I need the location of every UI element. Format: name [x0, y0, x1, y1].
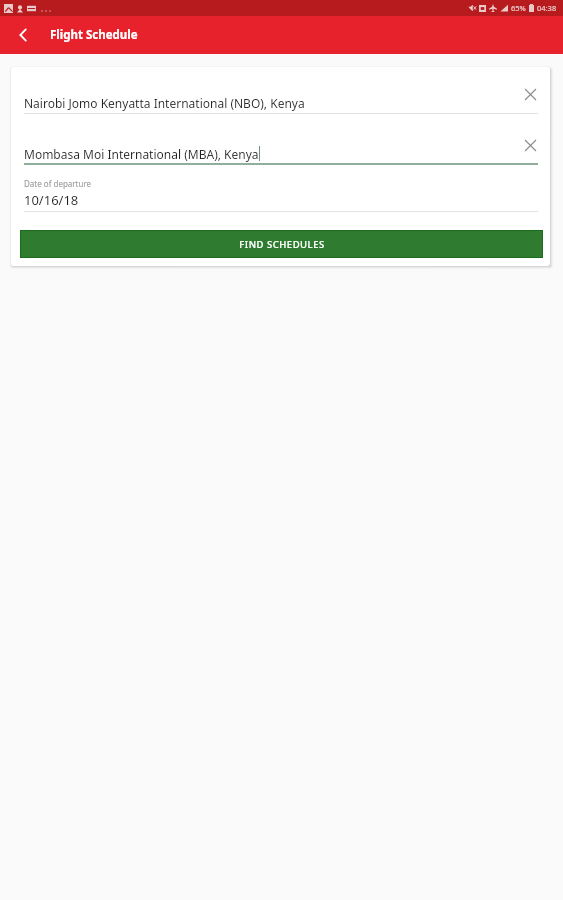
staticText: 10/16/18 [24, 191, 79, 209]
button[interactable]: Clear [522, 137, 538, 153]
staticText: Mombasa Moi International (MBA), Kenya [24, 146, 259, 162]
button[interactable]: Nairobi Jomo Kenyatta International (NBO… [24, 92, 538, 114]
button[interactable]: Date of departure [24, 178, 538, 212]
button[interactable]: Back [7, 19, 39, 51]
staticText: Nairobi Jomo Kenyatta International (NBO… [24, 95, 305, 111]
staticText: FIND SCHEDULES [239, 238, 325, 251]
button[interactable]: Clear [522, 86, 538, 102]
button[interactable]: Mombasa Moi International (MBA), Kenya [24, 143, 538, 165]
button[interactable]: FIND SCHEDULES [20, 230, 543, 258]
staticText: Date of departure [24, 178, 92, 189]
staticText: Flight Schedule [50, 27, 138, 43]
staticText: 65% [511, 3, 526, 13]
staticText: 04:38 [537, 3, 557, 13]
